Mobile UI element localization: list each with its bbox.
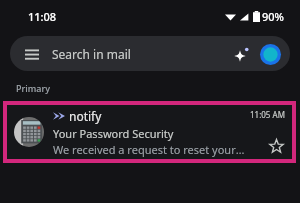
staticText: notify xyxy=(69,108,102,124)
button[interactable]: notify xyxy=(7,105,292,159)
staticText: Search in mail xyxy=(52,46,230,62)
staticText: We received a request to reset your pass… xyxy=(53,142,246,157)
button[interactable]: Account xyxy=(258,42,282,66)
staticText: 11:05 AM xyxy=(250,109,285,120)
staticText: 90% xyxy=(262,9,284,24)
button[interactable]: AI assist xyxy=(230,43,252,65)
staticText: 11:08 xyxy=(28,9,57,24)
button[interactable]: Open navigation menu xyxy=(10,36,290,71)
button[interactable]: Open navigation menu xyxy=(22,44,42,64)
button[interactable]: Star xyxy=(267,137,285,155)
staticText: Your Password Security xyxy=(53,126,174,141)
staticText: Primary xyxy=(16,82,50,94)
